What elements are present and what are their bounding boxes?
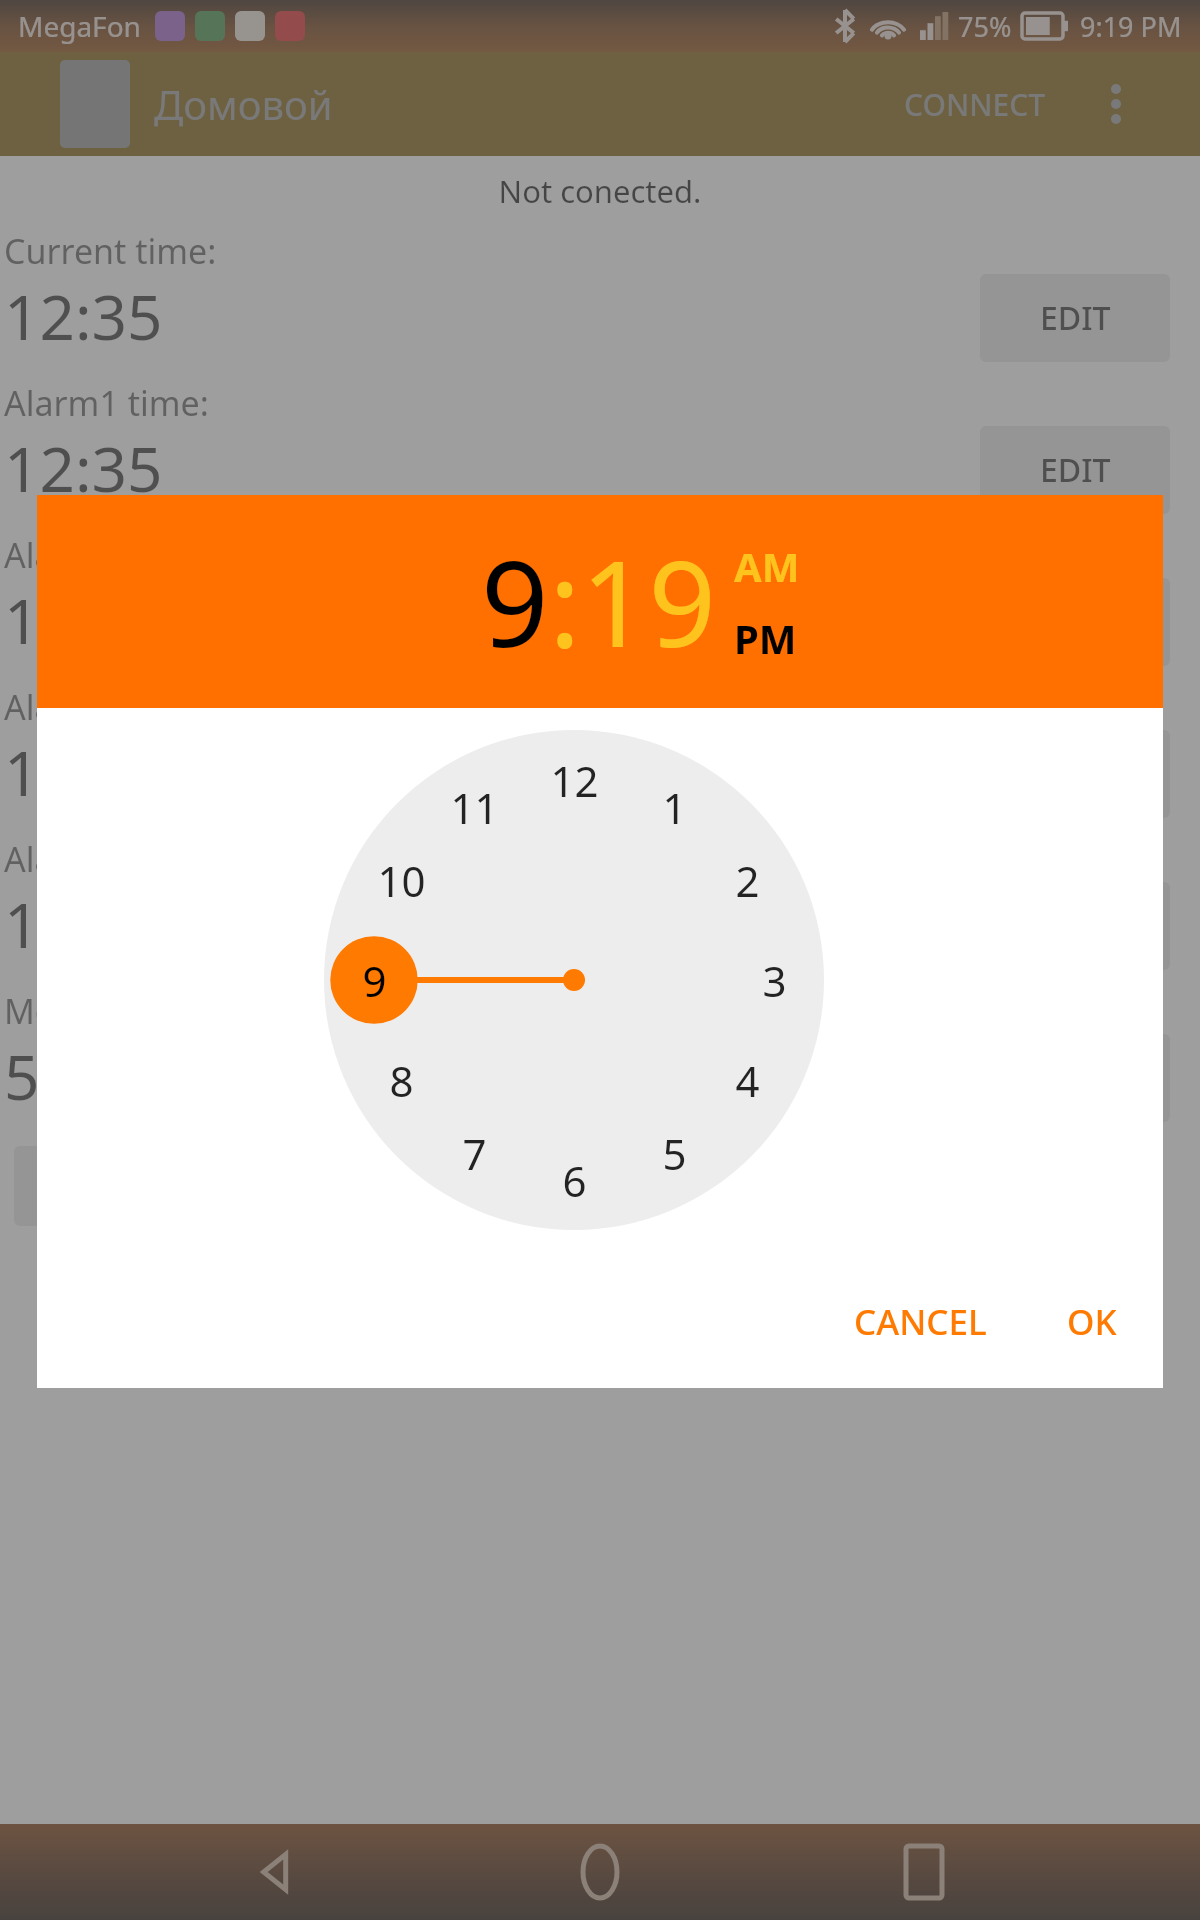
button[interactable]: 12 bbox=[532, 738, 616, 822]
button[interactable]: CONNECT bbox=[898, 78, 1052, 131]
staticText: 12:35 bbox=[4, 426, 163, 510]
staticText: Alarm4 time: bbox=[4, 836, 209, 882]
button[interactable]: 6 bbox=[532, 1138, 616, 1222]
button[interactable]: EDIT bbox=[980, 426, 1170, 514]
staticText: Motor time: bbox=[4, 988, 193, 1034]
staticText: 9 bbox=[362, 952, 387, 1009]
staticText: 12:35 bbox=[4, 578, 163, 662]
staticText: 7 bbox=[462, 1125, 487, 1182]
button[interactable]: 10 bbox=[359, 838, 443, 922]
button[interactable]: AM bbox=[734, 539, 800, 593]
staticText: 8 bbox=[389, 1052, 414, 1109]
button[interactable]: 4 bbox=[705, 1038, 789, 1122]
staticText: AM bbox=[734, 539, 800, 593]
button[interactable]: 7 bbox=[432, 1111, 516, 1195]
staticText: 12:35 bbox=[4, 274, 163, 358]
staticText: Alarm1 time: bbox=[4, 380, 209, 426]
button[interactable]: EDIT bbox=[980, 578, 1170, 666]
staticText: MegaFon bbox=[18, 7, 141, 45]
button[interactable]: 11 bbox=[432, 765, 516, 849]
button[interactable] bbox=[14, 1146, 204, 1226]
button[interactable]: EDIT bbox=[980, 1034, 1170, 1122]
staticText: Alarm3 time: bbox=[4, 684, 209, 730]
button[interactable]: CANCEL bbox=[832, 1282, 1009, 1362]
staticText: 3 bbox=[762, 952, 787, 1009]
staticText: 2 bbox=[735, 852, 760, 909]
button[interactable]: 9 bbox=[481, 521, 549, 682]
staticText: 9:19 PM bbox=[1080, 8, 1182, 45]
button[interactable]: 8 bbox=[359, 1038, 443, 1122]
button[interactable]: EDIT bbox=[980, 882, 1170, 970]
button[interactable]: PM bbox=[734, 611, 797, 665]
staticText: 75% bbox=[958, 8, 1012, 45]
button[interactable]: Back bbox=[228, 1824, 324, 1920]
staticText: Not conected. bbox=[0, 170, 1200, 212]
staticText: 19 bbox=[581, 521, 716, 682]
staticText: 6 bbox=[562, 1152, 587, 1209]
button[interactable]: 5 bbox=[632, 1111, 716, 1195]
staticText: 5 bbox=[662, 1125, 687, 1182]
staticText: 5 bbox=[4, 1034, 40, 1118]
staticText: : bbox=[549, 521, 581, 682]
button[interactable]: OK bbox=[1045, 1282, 1139, 1362]
staticText: 11 bbox=[450, 779, 499, 836]
button[interactable]: EDIT bbox=[980, 274, 1170, 362]
staticText: 9 bbox=[481, 521, 549, 682]
staticText: 12:35 bbox=[4, 730, 163, 814]
staticText: Alarm2 time: bbox=[4, 532, 209, 578]
button[interactable]: 2 bbox=[705, 838, 789, 922]
button[interactable]: Recent apps bbox=[876, 1824, 972, 1920]
button[interactable]: 3 bbox=[732, 938, 816, 1022]
staticText: 12:35 bbox=[4, 882, 163, 966]
button[interactable]: EDIT bbox=[980, 730, 1170, 818]
staticText: PM bbox=[734, 611, 797, 665]
staticText: CONNECT bbox=[904, 84, 1046, 125]
staticText: OK bbox=[1067, 1298, 1117, 1346]
button[interactable]: 1 bbox=[632, 765, 716, 849]
staticText: Current time: bbox=[4, 228, 217, 274]
staticText: EDIT bbox=[1040, 448, 1111, 492]
staticText: 10 bbox=[377, 852, 426, 909]
staticText: 12 bbox=[550, 752, 599, 809]
button[interactable]: 19 bbox=[581, 521, 716, 682]
staticText: Домовой bbox=[154, 77, 333, 131]
button[interactable]: Home bbox=[552, 1824, 648, 1920]
staticText: EDIT bbox=[1040, 296, 1111, 340]
staticText: CANCEL bbox=[854, 1298, 987, 1346]
staticText: 4 bbox=[735, 1052, 760, 1109]
staticText: 1 bbox=[662, 779, 687, 836]
button[interactable]: More options bbox=[1092, 80, 1140, 128]
button[interactable]: 9 bbox=[332, 938, 416, 1022]
